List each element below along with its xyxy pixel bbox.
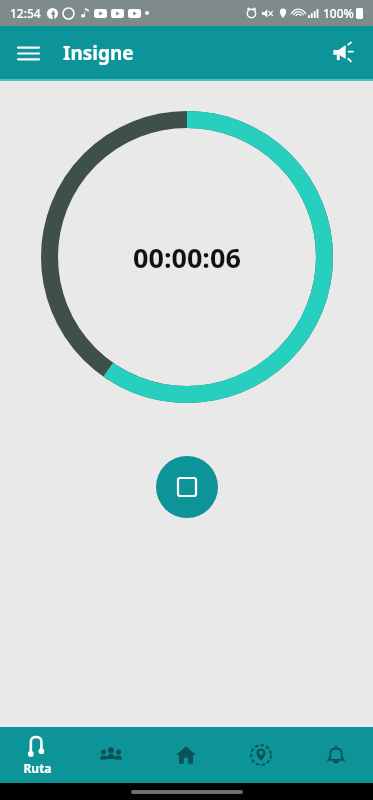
button[interactable]: Announcements [323,33,363,73]
button[interactable]: Navigation item [74,727,148,783]
staticText: 00:00:06 [133,239,241,276]
button[interactable]: Navigation item [298,727,373,783]
button[interactable]: Navigation item [148,727,223,783]
staticText: 100% [323,5,354,21]
staticText: 12:54 [10,5,41,21]
staticText: Ruta [23,760,52,776]
button[interactable]: Ruta [0,727,74,783]
staticText: Insigne [63,40,134,66]
button[interactable]: Stop [156,456,218,518]
button[interactable]: Navigation item [223,727,298,783]
button[interactable]: Menu [8,33,48,73]
